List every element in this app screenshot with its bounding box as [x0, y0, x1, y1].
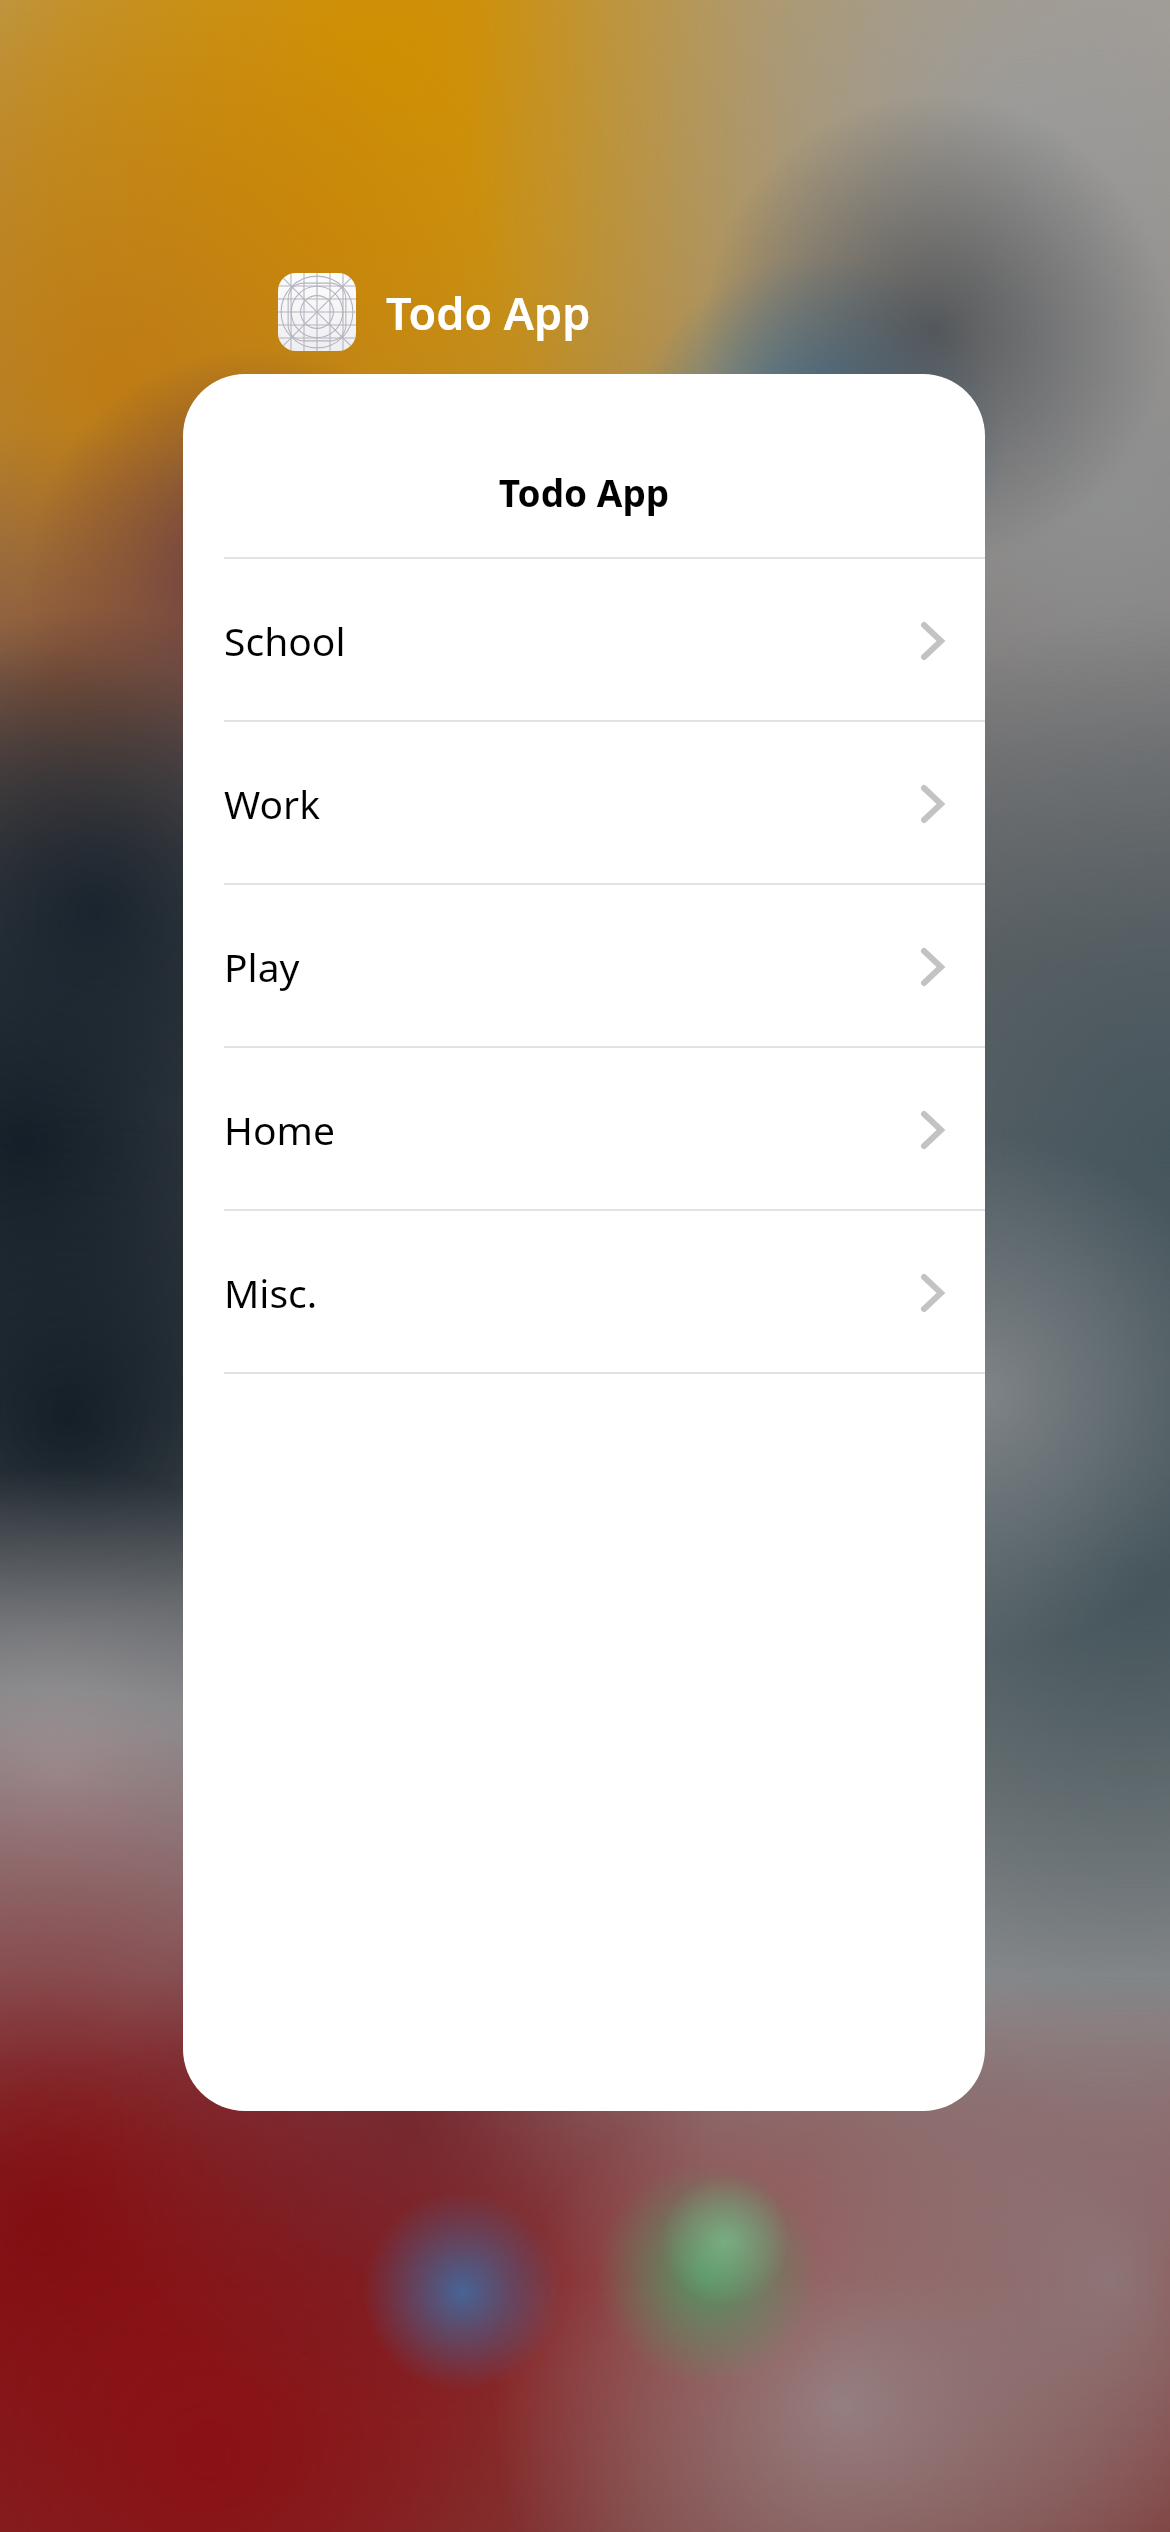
staticText: Play	[224, 940, 300, 993]
button[interactable]: Work	[183, 722, 985, 885]
staticText: Todo App	[386, 282, 591, 343]
staticText: Todo App	[183, 467, 985, 517]
staticText: Work	[224, 777, 321, 830]
button[interactable]: Home	[183, 1048, 985, 1211]
button[interactable]: Misc.	[183, 1211, 985, 1374]
button[interactable]: Play	[183, 885, 985, 1048]
staticText: Misc.	[224, 1266, 318, 1319]
button[interactable]: School	[183, 559, 985, 722]
staticText: School	[224, 614, 346, 667]
staticText: Home	[224, 1103, 335, 1156]
